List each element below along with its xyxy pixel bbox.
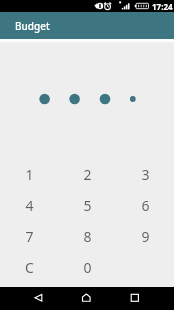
button[interactable]: 3 [116,159,174,190]
staticText: 17:24 [152,1,173,12]
staticText: 0 [83,258,92,277]
button[interactable]: 9 [116,221,174,252]
button[interactable]: 0 [58,252,116,283]
button[interactable]: Home [58,287,116,310]
button[interactable]: 4 [0,190,58,221]
button[interactable]: 7 [0,221,58,252]
button[interactable]: Back [0,287,58,310]
staticText: 6 [141,196,150,215]
button[interactable]: 6 [116,190,174,221]
staticText: 7 [25,227,34,246]
staticText: 9 [141,227,150,246]
staticText: 1 [25,165,34,184]
staticText: 3 [141,165,150,184]
staticText: 2 [83,165,92,184]
button[interactable]: Recent apps [116,287,174,310]
staticText: C [25,258,34,277]
staticText: 4 [25,196,34,215]
staticText: 5 [83,196,92,215]
button[interactable]: 2 [58,159,116,190]
button[interactable]: 1 [0,159,58,190]
staticText: 8 [83,227,92,246]
button[interactable]: 8 [58,221,116,252]
button[interactable]: C [0,252,58,283]
button[interactable]: 5 [58,190,116,221]
staticText: Budget [15,19,50,33]
